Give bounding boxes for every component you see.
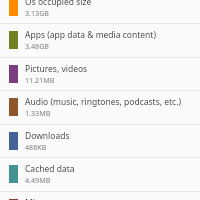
staticText: 3.13GB (25, 8, 50, 18)
staticText: 3.48GB (25, 41, 50, 51)
button[interactable]: Os occupied size (0, 0, 200, 24)
staticText: Os occupied size (25, 0, 92, 8)
staticText: 488KB (25, 142, 47, 152)
button[interactable]: Downloads (0, 125, 200, 158)
staticText: 1.33MB (25, 108, 51, 118)
button[interactable]: Apps (app data & media content) (0, 24, 200, 57)
button[interactable]: Misc. (0, 192, 200, 200)
button[interactable]: Audio (music, ringtones, podcasts, etc.) (0, 91, 200, 124)
staticText: Audio (music, ringtones, podcasts, etc.) (25, 96, 181, 108)
staticText: Downloads (25, 130, 70, 142)
button[interactable]: Cached data (0, 158, 200, 191)
button[interactable]: Pictures, videos (0, 58, 200, 91)
staticText: Misc. (25, 197, 46, 200)
staticText: Cached data (25, 163, 75, 175)
staticText: 4.49MB (25, 175, 51, 185)
staticText: Pictures, videos (25, 63, 88, 75)
staticText: 11.21MB (25, 75, 55, 85)
staticText: Apps (app data & media content) (25, 29, 156, 41)
